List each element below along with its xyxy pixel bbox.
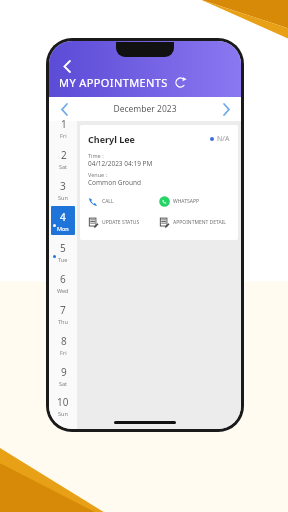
staticText: MY APPOINTMENTS (59, 75, 168, 90)
staticText: 9 (61, 365, 67, 379)
button[interactable]: 5 (51, 237, 75, 266)
staticText: UPDATE STATUS (102, 219, 140, 226)
staticText: Tue (58, 256, 68, 263)
staticText: 6 (60, 272, 66, 286)
button[interactable]: UPDATE STATUS (88, 217, 159, 228)
button[interactable]: CALL (88, 196, 159, 207)
button[interactable]: 6 (51, 268, 75, 297)
staticText: Cheryl Lee (88, 133, 135, 145)
staticText: Sun (58, 194, 68, 201)
button[interactable]: 2 (51, 144, 75, 173)
staticText: December 2023 (79, 103, 211, 115)
button[interactable]: 3 (51, 175, 75, 204)
staticText: Mon (57, 225, 69, 232)
button[interactable]: APPOINTMENT DETAIL (159, 217, 230, 228)
staticText: N/A (217, 134, 230, 144)
button[interactable]: 8 (51, 330, 75, 359)
staticText: CALL (102, 198, 114, 205)
staticText: 7 (60, 303, 66, 317)
button[interactable]: Cheryl Lee (80, 125, 238, 240)
staticText: 1 (61, 117, 67, 131)
staticText: Sun (58, 410, 68, 417)
button[interactable]: 7 (51, 299, 75, 328)
button[interactable]: Back (57, 56, 77, 76)
button[interactable]: 10 (51, 392, 75, 419)
staticText: Venue : (88, 171, 108, 178)
staticText: 5 (60, 241, 66, 255)
staticText: Fri (60, 132, 67, 139)
staticText: WHATSAPP (173, 198, 199, 205)
staticText: 2 (61, 148, 67, 162)
staticText: 3 (60, 179, 66, 193)
button[interactable]: 1 (51, 113, 75, 142)
staticText: Wed (57, 287, 69, 294)
button[interactable]: WHATSAPP (159, 196, 230, 207)
staticText: 04/12/2023 04:19 PM (88, 159, 153, 168)
staticText: 10 (57, 395, 69, 409)
staticText: 4 (60, 210, 66, 224)
button[interactable]: Previous month (49, 97, 79, 121)
staticText: 8 (61, 334, 67, 348)
staticText: Fri (60, 349, 67, 356)
button[interactable]: 4 (51, 206, 75, 235)
staticText: Thu (58, 318, 68, 325)
button[interactable]: 9 (51, 361, 75, 390)
button[interactable]: Refresh (174, 76, 187, 89)
staticText: APPOINTMENT DETAIL (173, 219, 226, 226)
staticText: Common Ground (88, 178, 142, 187)
staticText: Sat (59, 380, 68, 387)
button[interactable]: Next month (211, 97, 241, 121)
staticText: Time : (88, 152, 104, 159)
staticText: Sat (59, 163, 68, 170)
